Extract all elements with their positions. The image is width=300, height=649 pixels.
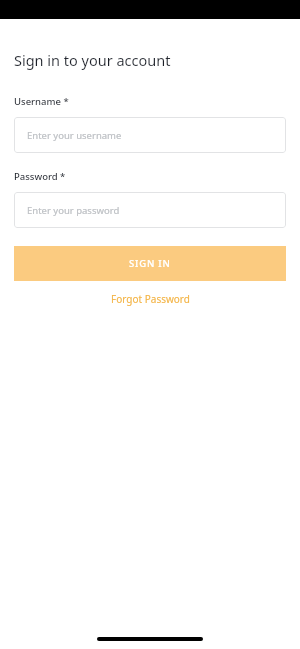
staticText: SIGN IN (129, 257, 171, 270)
staticText: Enter your username (27, 129, 122, 142)
button[interactable]: Enter your username (14, 117, 286, 153)
staticText: Forgot Password (111, 292, 190, 306)
button[interactable]: Forgot Password (14, 292, 286, 306)
staticText: Enter your password (27, 204, 120, 217)
staticText: Password * (14, 170, 66, 183)
staticText: Username * (14, 95, 69, 108)
staticText: Sign in to your account (14, 50, 171, 70)
button[interactable]: Enter your password (14, 192, 286, 228)
button[interactable]: SIGN IN (14, 246, 286, 281)
